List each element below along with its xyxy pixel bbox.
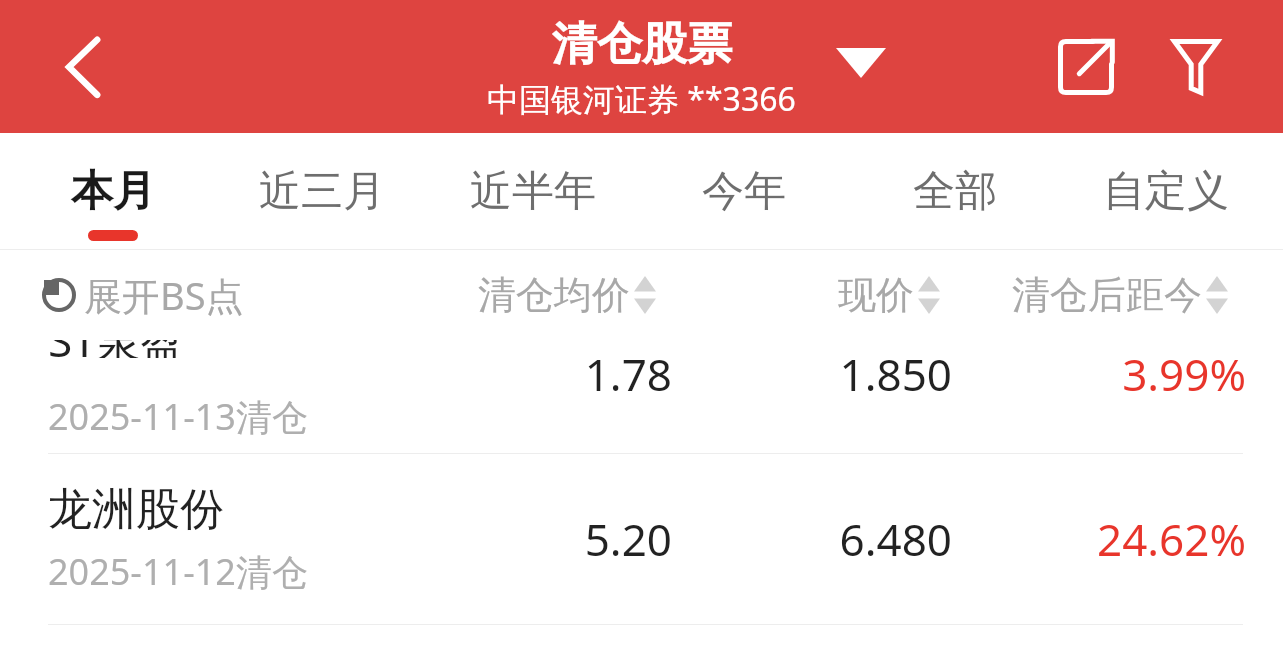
staticText: 近三月 — [259, 165, 385, 218]
staticText: 自定义 — [1103, 165, 1229, 218]
staticText: 1.78 — [584, 344, 672, 404]
staticText: ST泉盈 — [48, 340, 185, 358]
staticText: 6.480 — [839, 509, 952, 569]
staticText: 5.20 — [584, 509, 672, 569]
staticText: 近半年 — [470, 165, 596, 218]
button[interactable]: 自定义 — [1061, 133, 1271, 250]
button[interactable]: 本月 — [8, 133, 218, 250]
staticText: 清仓均价 — [478, 271, 630, 319]
staticText: 龙洲股份 — [48, 482, 224, 537]
button[interactable]: 现价 — [838, 250, 940, 340]
staticText: 中国银河证券 **3366 — [487, 77, 796, 121]
staticText: 3.99% — [1122, 344, 1246, 404]
button[interactable]: 龙洲股份 — [0, 454, 1283, 624]
button[interactable]: 近三月 — [217, 133, 427, 250]
button[interactable]: Filter — [1145, 16, 1247, 118]
button[interactable]: 近半年 — [428, 133, 638, 250]
staticText: 今年 — [702, 165, 786, 218]
button[interactable]: Switch account — [812, 22, 910, 104]
button[interactable]: 展开BS点 — [42, 269, 244, 321]
staticText: 2025-11-13清仓 — [48, 392, 308, 441]
button[interactable]: ST泉盈 — [0, 340, 1283, 453]
staticText: 现价 — [838, 271, 914, 319]
button[interactable]: 全部 — [850, 133, 1060, 250]
staticText: 24.62% — [1096, 509, 1246, 569]
button[interactable]: Back — [30, 13, 138, 121]
staticText: 2025-11-12清仓 — [48, 547, 308, 596]
button[interactable]: 今年 — [639, 133, 849, 250]
staticText: 清仓股票 — [552, 16, 732, 73]
button[interactable]: 清仓均价 — [478, 250, 656, 340]
staticText: 1.850 — [839, 344, 952, 404]
button[interactable]: 清仓后距今 — [1012, 250, 1228, 340]
staticText: 全部 — [913, 165, 997, 218]
button[interactable]: Share — [1035, 16, 1137, 118]
staticText: 清仓后距今 — [1012, 271, 1202, 319]
staticText: 展开BS点 — [84, 269, 244, 321]
staticText: 本月 — [71, 165, 155, 218]
